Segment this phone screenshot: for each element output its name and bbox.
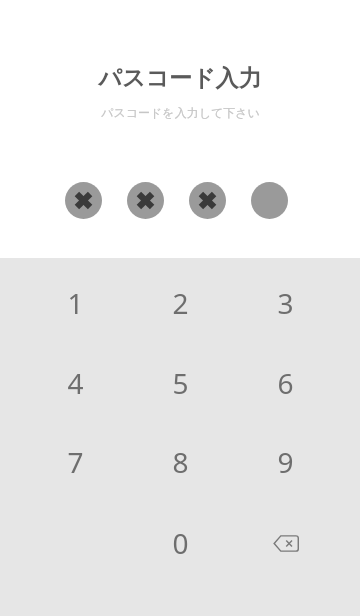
button[interactable]: 5	[128, 346, 233, 420]
staticText: 3	[277, 284, 294, 322]
button[interactable]: 6	[233, 346, 338, 420]
button[interactable]: 1	[23, 266, 128, 340]
staticText: 4	[67, 364, 84, 402]
button[interactable]: 2	[128, 266, 233, 340]
staticText: パスコードを入力して下さい	[101, 105, 260, 120]
staticText: パスコード入力	[98, 64, 262, 93]
staticText: 7	[67, 443, 84, 481]
staticText: 8	[172, 443, 189, 481]
staticText: 2	[172, 284, 189, 322]
staticText: 5	[172, 364, 189, 402]
button[interactable]: 8	[128, 425, 233, 499]
button[interactable]: 9	[233, 425, 338, 499]
staticText: 1	[67, 284, 84, 322]
button[interactable]: 3	[233, 266, 338, 340]
staticText: 9	[277, 443, 294, 481]
button[interactable]: 7	[23, 425, 128, 499]
button[interactable]: Backspace	[233, 506, 338, 580]
button[interactable]: 0	[128, 506, 233, 580]
button[interactable]: 4	[23, 346, 128, 420]
staticText: 0	[172, 524, 189, 562]
staticText: 6	[277, 364, 294, 402]
